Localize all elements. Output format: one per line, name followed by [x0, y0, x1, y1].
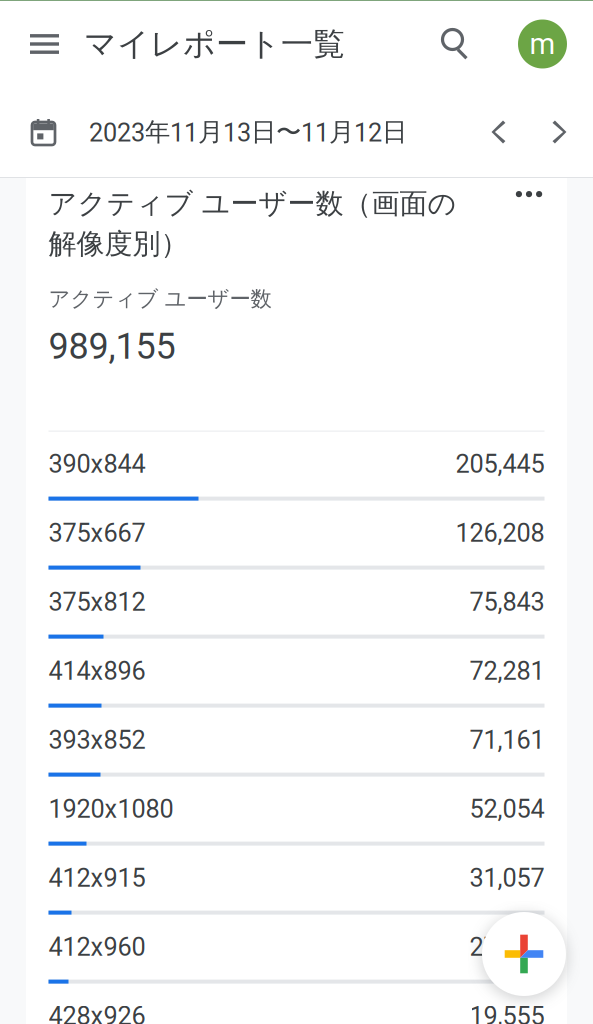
staticText: アクティブ ユーザー数 — [48, 285, 271, 312]
button[interactable]: More options — [513, 186, 544, 220]
button[interactable]: 375x667 — [48, 501, 544, 570]
staticText: 989,155 — [48, 325, 175, 368]
staticText: 31,057 — [469, 863, 544, 893]
staticText: 375x667 — [48, 518, 145, 548]
staticText: m — [529, 27, 555, 61]
button[interactable]: 375x812 — [48, 570, 544, 639]
staticText: 412x915 — [48, 863, 145, 893]
staticText: 414x896 — [48, 656, 145, 686]
staticText: アクティブ ユーザー数（画面の — [48, 186, 456, 221]
staticText: 解像度別） — [48, 226, 188, 262]
button[interactable]: 428x926 — [48, 984, 544, 1024]
button[interactable]: 412x960 — [48, 915, 544, 984]
staticText: 52,054 — [469, 794, 544, 824]
button[interactable]: 1920x1080 — [48, 777, 544, 846]
button[interactable]: Account — [518, 19, 567, 68]
staticText: 390x844 — [48, 449, 145, 479]
button[interactable]: Menu — [0, 1, 84, 87]
staticText: 412x960 — [48, 932, 145, 962]
staticText: 1920x1080 — [48, 794, 173, 824]
staticText: マイレポート一覧 — [84, 24, 345, 64]
staticText: 2023年11月13日〜11月12日 — [89, 116, 407, 148]
staticText: 205,445 — [455, 449, 544, 479]
button[interactable]: Next period — [538, 87, 582, 177]
button[interactable]: 393x852 — [48, 708, 544, 777]
button[interactable]: 412x915 — [48, 846, 544, 915]
button[interactable]: 414x896 — [48, 639, 544, 708]
staticText: 19,555 — [469, 1001, 544, 1024]
staticText: 72,281 — [469, 656, 544, 686]
staticText: 428x926 — [48, 1001, 145, 1024]
staticText: 75,843 — [469, 587, 544, 617]
staticText: 375x812 — [48, 587, 145, 617]
button[interactable]: 2023年11月13日〜11月12日 — [0, 87, 431, 177]
button[interactable]: Create report — [482, 912, 566, 996]
staticText: 71,161 — [469, 725, 544, 755]
button[interactable]: 390x844 — [48, 432, 544, 501]
staticText: 126,208 — [455, 518, 544, 548]
staticText: 393x852 — [48, 725, 145, 755]
staticText: 27,101 — [469, 932, 544, 962]
button[interactable]: Previous period — [477, 87, 521, 177]
button[interactable]: Search — [435, 22, 479, 66]
